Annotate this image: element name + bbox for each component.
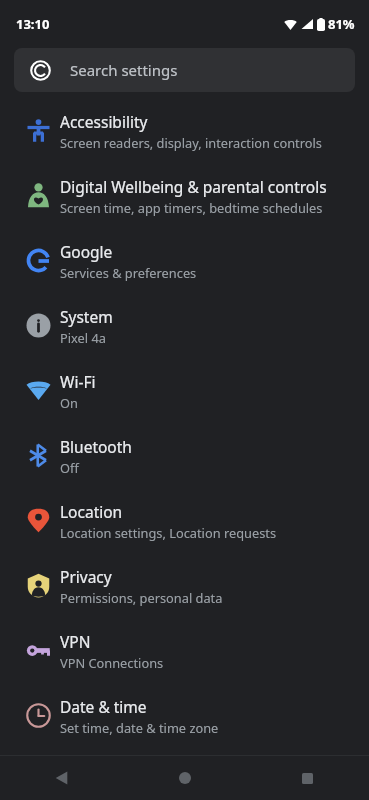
button[interactable]: Date & time: [0, 683, 369, 748]
button[interactable]: Bluetooth: [0, 423, 369, 488]
staticText: Date & time: [60, 696, 147, 717]
button[interactable]: Home: [123, 756, 246, 800]
button[interactable]: Recent apps: [246, 756, 369, 800]
button[interactable]: Back: [0, 756, 123, 800]
staticText: 13:10: [16, 15, 50, 33]
staticText: Digital Wellbeing & parental controls: [60, 176, 327, 197]
button[interactable]: VPN: [0, 618, 369, 683]
staticText: Location settings, Location requests: [60, 524, 277, 541]
staticText: Set time, date & time zone: [60, 719, 219, 736]
staticText: Services & preferences: [60, 264, 197, 281]
button[interactable]: Privacy: [0, 553, 369, 618]
staticText: VPN Connections: [60, 654, 164, 671]
staticText: Screen time, app timers, bedtime schedul…: [60, 199, 323, 216]
staticText: Accessibility: [60, 111, 148, 132]
button[interactable]: Digital Wellbeing & parental controls: [0, 163, 369, 228]
staticText: Google: [60, 241, 113, 262]
button[interactable]: Accessibility: [0, 98, 369, 163]
staticText: Search settings: [70, 60, 178, 80]
staticText: Wi-Fi: [60, 371, 96, 392]
other: Account: [30, 60, 51, 81]
staticText: Bluetooth: [60, 436, 132, 457]
staticText: 81%: [328, 15, 355, 33]
staticText: Screen readers, display, interaction con…: [60, 134, 322, 151]
staticText: Privacy: [60, 566, 112, 587]
button[interactable]: Account: [14, 48, 355, 92]
staticText: On: [60, 394, 78, 411]
staticText: Location: [60, 501, 123, 522]
button[interactable]: Google: [0, 228, 369, 293]
staticText: System: [60, 306, 113, 327]
button[interactable]: Wi-Fi: [0, 358, 369, 423]
staticText: VPN: [60, 631, 91, 652]
button[interactable]: Location: [0, 488, 369, 553]
button[interactable]: System: [0, 293, 369, 358]
staticText: Pixel 4a: [60, 329, 106, 346]
staticText: Permissions, personal data: [60, 589, 223, 606]
staticText: Off: [60, 459, 79, 476]
